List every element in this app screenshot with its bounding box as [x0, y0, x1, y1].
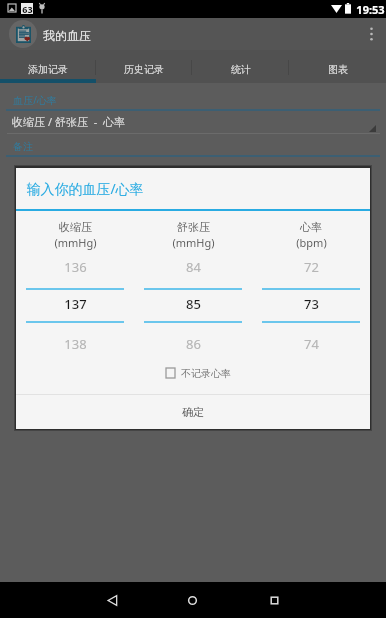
staticText: 收缩压	[59, 220, 92, 234]
button[interactable]: 74	[252, 335, 370, 351]
button[interactable]: 86	[134, 335, 252, 351]
button[interactable]: 图表	[289, 50, 386, 83]
button[interactable]: 确定	[16, 395, 370, 429]
button[interactable]: 136	[16, 258, 134, 274]
staticText: 舒张压	[177, 220, 210, 234]
staticText: 添加记录	[28, 63, 68, 76]
staticText: 图表	[328, 63, 348, 76]
staticText: 历史记录	[124, 63, 164, 76]
staticText: 不记录心率	[181, 367, 231, 380]
button[interactable]: 统计	[192, 50, 289, 83]
staticText: 136	[64, 258, 87, 274]
staticText: 收缩压 / 舒张压 - 心率	[12, 114, 125, 129]
staticText: 备注	[13, 140, 33, 153]
button[interactable]: Back	[94, 582, 130, 618]
staticText: 输入你的血压/心率	[26, 179, 144, 198]
staticText: 86	[186, 335, 201, 351]
staticText: 85	[186, 295, 201, 312]
button[interactable]: 72	[252, 258, 370, 274]
staticText: 我的血压	[43, 28, 91, 43]
button[interactable]: 不记录心率	[162, 362, 232, 384]
staticText: (mmHg)	[172, 235, 215, 250]
button[interactable]: 历史记录	[96, 50, 192, 83]
staticText: (bpm)	[296, 235, 327, 250]
button[interactable]: 138	[16, 335, 134, 351]
staticText: 72	[304, 258, 319, 274]
staticText: 138	[64, 335, 87, 351]
button[interactable]: Recent apps	[256, 582, 292, 618]
staticText: 统计	[231, 63, 251, 76]
staticText: 137	[64, 295, 87, 312]
staticText: (mmHg)	[54, 235, 97, 250]
staticText: 确定	[182, 405, 204, 419]
staticText: 血压/心率	[13, 93, 57, 107]
button[interactable]: 添加记录	[0, 50, 96, 83]
staticText: 73	[304, 295, 319, 312]
staticText: 心率	[300, 220, 322, 234]
staticText: 74	[304, 335, 319, 351]
staticText: 19:53	[356, 2, 385, 17]
button[interactable]: 84	[134, 258, 252, 274]
staticText: 63	[22, 3, 33, 14]
button[interactable]: Home	[174, 582, 210, 618]
button[interactable]: More options	[356, 18, 386, 50]
staticText: 84	[186, 258, 201, 274]
